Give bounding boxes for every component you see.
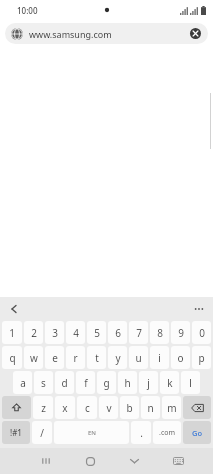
button[interactable]: Clear: [189, 27, 202, 40]
button[interactable]: g: [97, 371, 116, 394]
button[interactable]: k: [160, 371, 179, 394]
staticText: s: [41, 376, 46, 390]
button[interactable]: 1: [2, 321, 22, 344]
button[interactable]: m: [162, 396, 181, 419]
staticText: 4: [73, 326, 79, 340]
button[interactable]: 8: [150, 321, 169, 344]
button[interactable]: Home: [68, 448, 112, 474]
button[interactable]: Backspace: [183, 396, 211, 419]
staticText: w: [30, 351, 38, 365]
button[interactable]: b: [120, 396, 139, 419]
button[interactable]: h: [118, 371, 137, 394]
button[interactable]: c: [77, 396, 97, 419]
button[interactable]: 7: [129, 321, 148, 344]
button[interactable]: 5: [87, 321, 106, 344]
button[interactable]: a: [13, 371, 32, 394]
button[interactable]: 6: [108, 321, 127, 344]
button[interactable]: x: [55, 396, 75, 419]
staticText: c: [85, 401, 90, 415]
button[interactable]: Go: [183, 421, 211, 444]
button[interactable]: z: [33, 396, 53, 419]
button[interactable]: y: [108, 346, 127, 369]
staticText: e: [52, 351, 58, 365]
staticText: Go: [192, 428, 203, 438]
button[interactable]: q: [2, 346, 22, 369]
staticText: 5: [94, 326, 100, 340]
button[interactable]: 9: [171, 321, 190, 344]
staticText: b: [126, 401, 133, 415]
staticText: r: [73, 351, 78, 365]
staticText: j: [147, 376, 150, 390]
button[interactable]: 2: [24, 321, 43, 344]
staticText: y: [115, 351, 121, 365]
staticText: 1: [9, 326, 15, 340]
staticText: /: [40, 426, 44, 440]
staticText: 0: [199, 326, 205, 340]
staticText: l: [189, 376, 192, 390]
staticText: h: [124, 376, 131, 390]
staticText: v: [106, 401, 112, 415]
staticText: 6: [115, 326, 121, 340]
staticText: d: [61, 376, 68, 390]
button[interactable]: Hide keyboard: [112, 448, 156, 474]
staticText: k: [167, 376, 173, 390]
staticText: 3: [52, 326, 58, 340]
button[interactable]: t: [87, 346, 106, 369]
staticText: u: [135, 351, 142, 365]
staticText: 2: [31, 326, 37, 340]
staticText: EN: [88, 429, 96, 437]
button[interactable]: .: [131, 421, 151, 444]
staticText: 9: [178, 326, 184, 340]
button[interactable]: Back: [5, 300, 23, 318]
button[interactable]: l: [181, 371, 200, 394]
button[interactable]: i: [150, 346, 169, 369]
staticText: .com: [159, 428, 176, 438]
button[interactable]: d: [55, 371, 74, 394]
staticText: www.samsung.com: [29, 28, 189, 40]
staticText: 7: [136, 326, 142, 340]
button[interactable]: s: [34, 371, 53, 394]
staticText: g: [103, 376, 110, 390]
button[interactable]: 4: [66, 321, 85, 344]
button[interactable]: /: [32, 421, 52, 444]
button[interactable]: More options: [190, 300, 208, 318]
staticText: a: [20, 376, 26, 390]
button[interactable]: o: [171, 346, 190, 369]
staticText: o: [177, 351, 184, 365]
button[interactable]: f: [76, 371, 95, 394]
button[interactable]: Recents: [24, 448, 68, 474]
staticText: !#1: [10, 427, 22, 438]
staticText: f: [84, 376, 88, 390]
button[interactable]: .com: [153, 421, 181, 444]
staticText: x: [62, 401, 68, 415]
button[interactable]: 0: [192, 321, 211, 344]
button[interactable]: v: [99, 396, 118, 419]
button[interactable]: Shift: [2, 396, 31, 419]
staticText: .: [140, 426, 143, 440]
staticText: m: [167, 401, 177, 415]
staticText: p: [198, 351, 205, 365]
button[interactable]: r: [66, 346, 85, 369]
button[interactable]: 3: [45, 321, 64, 344]
staticText: 10:00: [17, 5, 38, 16]
button[interactable]: w: [24, 346, 43, 369]
staticText: z: [41, 401, 46, 415]
button[interactable]: www.samsung.com: [5, 23, 208, 44]
button[interactable]: n: [141, 396, 160, 419]
staticText: i: [158, 351, 161, 365]
button[interactable]: p: [192, 346, 211, 369]
button[interactable]: u: [129, 346, 148, 369]
staticText: 8: [157, 326, 163, 340]
button[interactable]: Change keyboard: [156, 448, 200, 474]
staticText: t: [95, 351, 99, 365]
button[interactable]: e: [45, 346, 64, 369]
staticText: q: [9, 351, 16, 365]
staticText: n: [147, 401, 154, 415]
button[interactable]: Space: [54, 421, 129, 444]
button[interactable]: j: [139, 371, 158, 394]
button[interactable]: !#1: [2, 421, 30, 444]
